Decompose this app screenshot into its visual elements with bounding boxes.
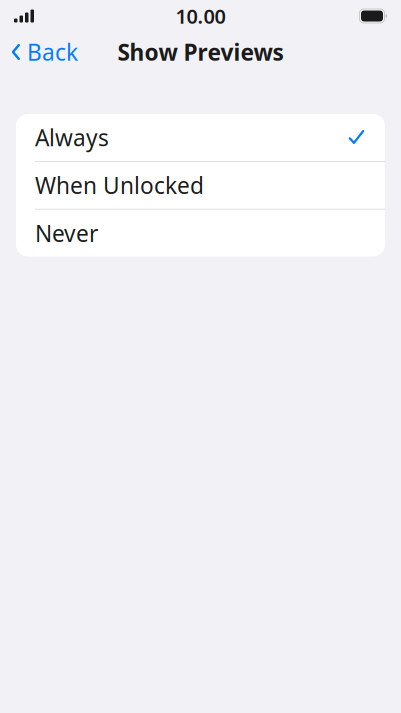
staticText: 10.00 [175,3,225,29]
button[interactable]: Always [16,114,385,161]
button[interactable]: Never [16,210,385,257]
staticText: Never [35,218,98,248]
staticText: When Unlocked [35,170,204,200]
button[interactable]: When Unlocked [16,162,385,209]
button[interactable]: Back [0,31,78,73]
staticText: Back [27,37,78,67]
staticText: Show Previews [117,37,283,67]
staticText: Always [35,122,109,152]
